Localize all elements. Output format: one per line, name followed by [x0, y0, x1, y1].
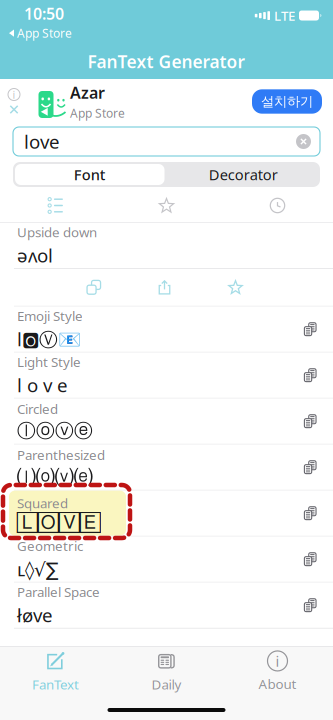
staticText: App Store: [17, 25, 72, 41]
button[interactable]: Daily: [111, 648, 222, 696]
staticText: Light Style: [17, 353, 81, 371]
button[interactable]: Share: [129, 271, 200, 303]
button[interactable]: Favorite: [200, 271, 271, 303]
staticText: Squared: [17, 494, 68, 512]
button[interactable]: Favorites: [111, 189, 222, 222]
button[interactable]: Emoji Style: [0, 307, 333, 352]
button[interactable]: Clear text: [296, 134, 311, 149]
button[interactable]: Light Style: [0, 353, 333, 398]
staticText: i: [275, 651, 279, 671]
staticText: łøve: [17, 603, 53, 627]
button[interactable]: Ad information: [8, 88, 20, 100]
button[interactable]: Close ad: [9, 104, 19, 114]
staticText: Parenthesized: [17, 446, 105, 464]
button[interactable]: Parenthesized: [0, 445, 333, 490]
staticText: Font: [74, 165, 106, 184]
staticText: Daily: [151, 675, 181, 693]
button[interactable]: Decorator: [166, 162, 320, 187]
staticText: Decorator: [209, 165, 278, 184]
staticText: Circled: [17, 400, 58, 418]
button[interactable]: i: [222, 648, 333, 696]
staticText: i: [12, 87, 15, 102]
staticText: About: [258, 675, 296, 693]
staticText: ⒧⒪⒱⒠: [17, 466, 93, 488]
button[interactable]: All styles: [0, 189, 111, 222]
staticText: l🅾Ⓥ📧: [17, 327, 81, 351]
button[interactable]: 설치하기: [252, 89, 322, 114]
staticText: Geometric: [17, 537, 83, 555]
button[interactable]: Parallel Space: [0, 583, 333, 628]
button[interactable]: Circled: [0, 399, 333, 444]
staticText: Azar: [70, 82, 105, 103]
button[interactable]: Recents: [222, 189, 333, 222]
staticText: Parallel Space: [17, 583, 100, 601]
staticText: FanText Generator: [87, 50, 245, 73]
button[interactable]: Geometric: [0, 537, 333, 582]
staticText: 🄻🄾🅅🄴: [17, 514, 101, 532]
staticText: FanText: [32, 675, 79, 693]
button[interactable]: Font: [13, 162, 166, 187]
staticText: l o v e: [17, 373, 68, 397]
button[interactable]: Copy: [58, 271, 129, 303]
staticText: 10:50: [24, 3, 64, 24]
button[interactable]: FanText: [0, 648, 111, 696]
staticText: ʟ◊√∑: [17, 557, 59, 581]
staticText: Emoji Style: [17, 307, 83, 325]
staticText: love: [24, 129, 60, 154]
button[interactable]: Squared: [0, 491, 333, 536]
staticText: ǝʌol: [17, 243, 53, 268]
staticText: LTE: [274, 7, 295, 24]
staticText: 설치하기: [261, 93, 313, 110]
staticText: ⓛⓞⓥⓔ: [17, 420, 93, 442]
staticText: App Store: [70, 105, 125, 121]
staticText: Upside down: [17, 223, 97, 241]
